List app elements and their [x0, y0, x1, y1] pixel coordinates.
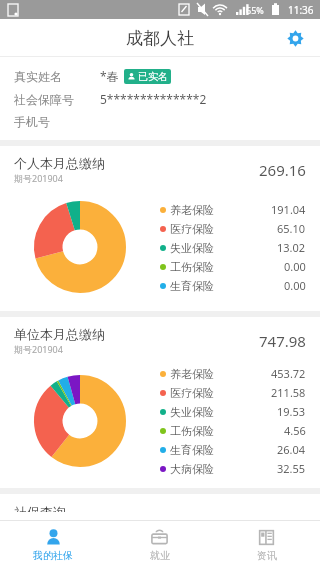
staticText: 453.72 [271, 366, 306, 381]
staticText: 211.58 [271, 385, 306, 400]
staticText: 手机号 [14, 114, 50, 129]
staticText: 社保查询 [14, 504, 66, 512]
staticText: 5**************2 [100, 91, 207, 107]
staticText: 0.00 [284, 278, 306, 293]
button[interactable]: 已实名 [124, 69, 171, 84]
button[interactable]: 资讯 [213, 521, 320, 568]
staticText: 工伤保险 [170, 424, 214, 438]
button[interactable]: 单位本月总缴纳 [0, 317, 320, 362]
staticText: 19.53 [277, 404, 306, 419]
staticText: 医疗保险 [170, 386, 214, 400]
button[interactable]: 我的社保 [0, 521, 106, 568]
staticText: 个人本月总缴纳 [14, 155, 105, 171]
staticText: 期号201904 [14, 172, 63, 184]
staticText: 已实名 [138, 70, 168, 83]
staticText: 失业保险 [170, 241, 214, 255]
staticText: 就业 [150, 549, 170, 562]
staticText: 11:36 [288, 3, 314, 17]
staticText: 失业保险 [170, 405, 214, 419]
staticText: 养老保险 [170, 367, 214, 381]
staticText: 191.04 [271, 202, 306, 217]
staticText: 社会保障号 [14, 92, 74, 107]
staticText: 4.56 [284, 423, 306, 438]
staticText: 生育保险 [170, 279, 214, 293]
button[interactable]: Settings [280, 23, 310, 53]
staticText: 期号201904 [14, 343, 63, 355]
staticText: 真实姓名 [14, 69, 62, 84]
staticText: 65% [246, 4, 264, 16]
staticText: 成都人社 [126, 28, 194, 49]
staticText: 养老保险 [170, 203, 214, 217]
staticText: 生育保险 [170, 443, 214, 457]
staticText: 269.16 [259, 160, 306, 180]
staticText: 医疗保险 [170, 222, 214, 236]
staticText: 工伤保险 [170, 260, 214, 274]
staticText: *春 [100, 68, 119, 84]
button[interactable]: 就业 [106, 521, 213, 568]
staticText: 32.55 [277, 461, 306, 476]
staticText: 26.04 [277, 442, 306, 457]
staticText: 资讯 [257, 549, 277, 562]
staticText: 单位本月总缴纳 [14, 326, 105, 342]
staticText: 大病保险 [170, 462, 214, 476]
staticText: 65.10 [277, 221, 306, 236]
button[interactable]: 个人本月总缴纳 [0, 146, 320, 191]
staticText: 13.02 [277, 240, 306, 255]
staticText: 我的社保 [33, 549, 73, 562]
staticText: 0.00 [284, 259, 306, 274]
staticText: 747.98 [259, 331, 306, 351]
